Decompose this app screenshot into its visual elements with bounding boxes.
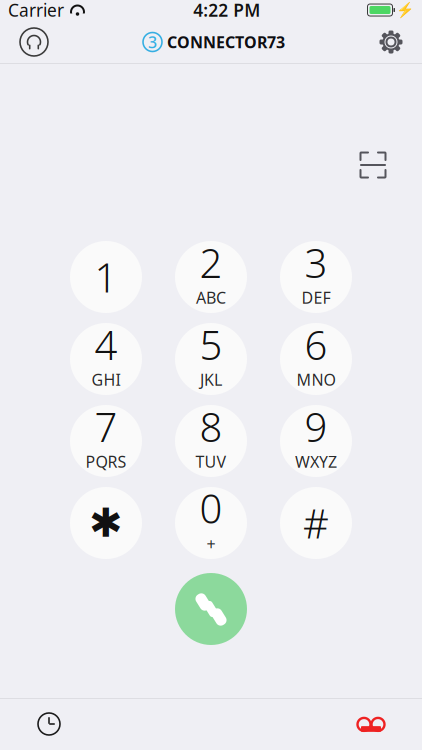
staticText: DEF [301,287,330,308]
button[interactable]: 2 [175,241,247,313]
button[interactable]: 1 [70,241,142,313]
staticText: ABC [196,287,226,308]
staticText: GHI [91,369,120,390]
staticText: Carrier [8,0,64,21]
staticText: PQRS [85,451,126,472]
staticText: 6 [304,318,327,371]
button[interactable]: 5 [175,323,247,395]
staticText: CONNECTOR73 [167,31,285,53]
button[interactable]: Scan code [350,142,396,188]
button[interactable]: 8 [175,405,247,477]
button[interactable]: 4 [70,323,142,395]
button[interactable]: Voicemail [348,706,394,742]
staticText: 0 [199,481,222,534]
button[interactable]: 7 [70,405,142,477]
button[interactable]: 0 [175,487,247,559]
staticText: TUV [195,451,226,472]
staticText: 2 [199,236,222,289]
button[interactable]: 6 [280,323,352,395]
staticText: 3 [304,236,327,289]
staticText: 8 [199,400,222,453]
staticText: ⚡ [396,2,414,18]
staticText: 1 [94,250,117,303]
staticText: WXYZ [295,451,337,472]
staticText: MNO [296,369,335,390]
staticText: 9 [304,400,327,453]
button[interactable]: 3 [280,241,352,313]
staticText: JKL [200,369,222,390]
button[interactable]: Profile [8,22,60,62]
button[interactable]: ✱ [70,487,142,559]
staticText: 4 [94,318,117,371]
staticText: ✱ [89,500,123,546]
button[interactable]: # [280,487,352,559]
staticText: 7 [94,400,117,453]
button[interactable]: 3 [143,31,285,53]
button[interactable]: Settings [368,25,414,59]
button[interactable]: Recents [28,703,70,745]
button[interactable]: Call [175,573,247,645]
staticText: 4:22 PM [193,0,260,21]
staticText: 3 [148,31,157,53]
staticText: # [303,496,329,549]
button[interactable]: 9 [280,405,352,477]
staticText: + [206,533,215,555]
staticText: 5 [199,318,222,371]
